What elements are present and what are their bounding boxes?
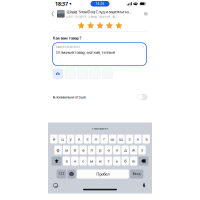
staticText: ц — [61, 136, 63, 142]
staticText: л — [116, 147, 118, 153]
staticText: я — [65, 158, 67, 164]
staticText: ◥ — [68, 2, 71, 5]
staticText: х — [137, 136, 139, 142]
staticText: з — [128, 136, 130, 142]
button[interactable]: Shift — [51, 156, 62, 165]
staticText: щ — [119, 136, 123, 142]
button[interactable]: с — [79, 156, 87, 165]
staticText: б — [124, 158, 126, 164]
staticText: е — [86, 136, 88, 142]
button[interactable]: п — [88, 145, 95, 154]
button[interactable]: л — [113, 145, 120, 154]
staticText: ф — [56, 147, 59, 153]
staticText: ъ — [145, 136, 147, 142]
button[interactable]: ь — [113, 156, 120, 165]
staticText: р — [99, 147, 101, 153]
button[interactable]: 123 — [57, 169, 66, 178]
staticText: ж — [132, 147, 135, 153]
staticText: в — [74, 147, 76, 153]
staticText: Ваше впечатление — [56, 45, 80, 49]
staticText: н — [95, 136, 97, 142]
button[interactable]: Удалить — [138, 156, 148, 165]
button[interactable]: ц — [58, 134, 66, 143]
button[interactable]: х — [134, 134, 141, 143]
button[interactable]: Ваше впечатление — [53, 43, 147, 66]
staticText: т — [107, 158, 109, 164]
staticText: Ввод — [133, 172, 141, 176]
button[interactable]: з — [126, 134, 133, 143]
button[interactable]: и — [96, 156, 104, 165]
staticText: Отличный товар, мягкий, теплый — [56, 49, 115, 55]
staticText: а — [82, 147, 84, 153]
button[interactable]: в — [71, 145, 78, 154]
button[interactable]: ъ — [142, 134, 150, 143]
button[interactable]: д — [121, 145, 129, 154]
staticText: ч — [74, 158, 76, 164]
staticText: 123 — [58, 172, 64, 176]
staticText: цвет: голубой, размер: единый, арт… — [66, 15, 118, 18]
staticText: Как вам товар? — [53, 35, 82, 40]
button[interactable]: Диктовка — [143, 182, 152, 189]
staticText: ш — [111, 136, 115, 142]
button[interactable]: р — [96, 145, 104, 154]
button[interactable]: о — [105, 145, 112, 154]
staticText: 18:37 — [55, 0, 68, 7]
button[interactable]: Оценка 3 — [96, 22, 104, 29]
button[interactable]: а — [79, 145, 87, 154]
button[interactable]: ш — [109, 134, 116, 143]
button[interactable]: я — [63, 156, 70, 165]
button[interactable]: Оценка 2 — [87, 22, 94, 29]
button[interactable]: Анонимный отзыв — [48, 93, 152, 101]
button[interactable]: ж — [130, 145, 137, 154]
button[interactable]: Помощь — [144, 9, 152, 18]
button[interactable]: к — [75, 134, 83, 143]
button[interactable]: б — [121, 156, 129, 165]
staticText: г — [103, 136, 105, 142]
staticText: ✕ — [142, 45, 144, 48]
staticText: к — [78, 136, 80, 142]
button[interactable]: Оценка 5 — [115, 22, 122, 29]
staticText: э — [141, 147, 143, 153]
staticText: м — [90, 158, 93, 164]
staticText: с — [82, 158, 84, 164]
staticText: д — [124, 147, 126, 153]
button[interactable]: н — [92, 134, 99, 143]
button[interactable]: Добавить фото — [53, 68, 63, 79]
button[interactable]: й — [50, 134, 57, 143]
button[interactable]: Эмодзи — [48, 182, 58, 189]
button[interactable]: Оценка 4 — [106, 22, 113, 29]
button[interactable]: г — [100, 134, 108, 143]
staticText: 14:26 — [95, 2, 104, 5]
button[interactable]: у — [67, 134, 74, 143]
button[interactable]: Сменить язык — [67, 169, 76, 178]
staticText: отменьшийн — [91, 127, 108, 130]
button[interactable]: Оценка 1 — [77, 22, 85, 29]
staticText: ы — [65, 147, 68, 153]
staticText: ь — [116, 158, 118, 164]
button[interactable]: т — [105, 156, 112, 165]
button[interactable]: е — [84, 134, 91, 143]
button[interactable]: э — [138, 145, 146, 154]
button[interactable]: ф — [54, 145, 62, 154]
staticText: п — [91, 147, 93, 153]
button[interactable]: Ввод — [130, 169, 143, 178]
staticText: и — [99, 158, 101, 164]
button[interactable]: м — [88, 156, 95, 165]
staticText: Пробел — [96, 171, 109, 177]
staticText: й — [53, 136, 55, 142]
button[interactable]: ы — [63, 145, 70, 154]
button[interactable]: Пробел — [77, 169, 129, 178]
button[interactable]: ч — [71, 156, 78, 165]
staticText: о — [107, 147, 109, 153]
button[interactable]: ю — [130, 156, 137, 165]
staticText: ю — [132, 158, 135, 164]
staticText: ? — [145, 12, 146, 15]
button[interactable]: щ — [117, 134, 125, 143]
button[interactable]: Назад — [48, 8, 57, 19]
staticText: Анонимный отзыв — [53, 94, 86, 100]
staticText: у — [70, 136, 72, 142]
staticText: Шарф SnowDog Снуд и варежки ко… — [66, 9, 131, 14]
